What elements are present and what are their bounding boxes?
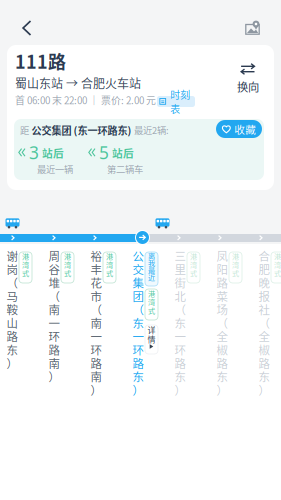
staticText: ） bbox=[216, 381, 227, 398]
staticText: 港 bbox=[190, 251, 197, 261]
staticText: 环 bbox=[174, 341, 185, 358]
staticText: 场 bbox=[216, 301, 227, 318]
staticText: 离 bbox=[148, 250, 155, 261]
staticText: ） bbox=[258, 381, 269, 398]
staticText: 我 bbox=[148, 258, 155, 268]
staticText: 路 bbox=[258, 355, 269, 371]
staticText: 里 bbox=[174, 261, 185, 277]
staticText: 街 bbox=[174, 274, 185, 291]
staticText: 路 bbox=[174, 355, 185, 371]
staticText: 港 bbox=[64, 251, 71, 261]
staticText: 三 bbox=[174, 247, 185, 264]
staticText: 菜 bbox=[216, 288, 227, 304]
staticText: 山 bbox=[6, 314, 17, 331]
staticText: （ bbox=[216, 314, 227, 331]
staticText: 南 bbox=[48, 355, 59, 371]
staticText: 南 bbox=[90, 314, 101, 331]
staticText: 111路 bbox=[15, 48, 66, 74]
staticText: 一 bbox=[48, 314, 59, 331]
staticText: 公 bbox=[132, 247, 143, 264]
staticText: 距 bbox=[20, 123, 29, 137]
staticText: 合 bbox=[258, 247, 269, 264]
staticText: 凤 bbox=[216, 247, 227, 264]
staticText: （ bbox=[6, 274, 17, 291]
staticText: 集 bbox=[132, 274, 143, 291]
staticText: ） bbox=[48, 368, 59, 385]
staticText: ） bbox=[90, 381, 101, 398]
staticText: 堆 bbox=[48, 274, 59, 291]
staticText: 收藏 bbox=[234, 121, 256, 137]
staticText: 南 bbox=[48, 301, 59, 318]
staticText: 东 bbox=[258, 368, 269, 385]
staticText: 谢 bbox=[6, 247, 17, 264]
staticText: 市 bbox=[90, 288, 101, 304]
staticText: 路 bbox=[48, 341, 59, 358]
staticText: 路 bbox=[216, 274, 227, 291]
staticText: 团 bbox=[132, 288, 143, 304]
staticText: （ bbox=[48, 288, 59, 304]
staticText: 东 bbox=[174, 314, 185, 331]
staticText: 第二辆车 bbox=[107, 162, 143, 176]
staticText: 时刻表 bbox=[170, 87, 190, 116]
staticText: 北 bbox=[174, 288, 185, 304]
staticText: 椒 bbox=[216, 341, 227, 358]
staticText: 东 bbox=[216, 368, 227, 385]
staticText: 首 06:00 末 22:00 ｜ 票价: 2.00 元 bbox=[15, 93, 156, 107]
staticText: 最近2辆: bbox=[134, 123, 169, 137]
staticText: 式 bbox=[190, 268, 197, 278]
staticText: （ bbox=[258, 314, 269, 331]
staticText: 环 bbox=[132, 341, 143, 358]
staticText: 湾 bbox=[190, 259, 197, 270]
staticText: 肥 bbox=[258, 261, 269, 277]
staticText: 式 bbox=[148, 305, 155, 316]
staticText: 东 bbox=[132, 314, 143, 331]
staticText: 花 bbox=[90, 274, 101, 291]
staticText: 湾 bbox=[148, 297, 155, 307]
staticText: 港 bbox=[106, 251, 113, 261]
button[interactable]: 换向 bbox=[228, 62, 268, 96]
staticText: 式 bbox=[22, 268, 29, 278]
staticText: ） bbox=[132, 381, 143, 398]
staticText: 湾 bbox=[64, 259, 71, 270]
staticText: 式 bbox=[232, 268, 239, 278]
staticText: 椒 bbox=[258, 341, 269, 358]
staticText: 谷 bbox=[48, 261, 59, 277]
staticText: 式 bbox=[274, 268, 281, 278]
staticText: 路 bbox=[132, 355, 143, 371]
staticText: 一 bbox=[90, 328, 101, 344]
staticText: 湾 bbox=[274, 259, 281, 270]
staticText: 湾 bbox=[106, 259, 113, 270]
staticText: （ bbox=[174, 301, 185, 318]
staticText: 裕 bbox=[90, 247, 101, 264]
staticText: 报 bbox=[258, 288, 269, 304]
button[interactable]: Back bbox=[10, 14, 44, 42]
staticText: 路 bbox=[90, 355, 101, 371]
staticText: 东 bbox=[174, 368, 185, 385]
staticText: 东 bbox=[6, 341, 17, 358]
staticText: 全 bbox=[216, 328, 227, 344]
staticText: （ bbox=[90, 301, 101, 318]
staticText: 全 bbox=[258, 328, 269, 344]
staticText: 站后 bbox=[112, 145, 134, 160]
staticText: 丰 bbox=[90, 261, 101, 277]
staticText: 马 bbox=[6, 288, 17, 304]
staticText: （ bbox=[132, 301, 143, 318]
staticText: 南 bbox=[90, 368, 101, 385]
staticText: 交 bbox=[132, 261, 143, 277]
staticText: 岗 bbox=[6, 261, 17, 277]
staticText: 站后 bbox=[42, 145, 64, 160]
staticText: 港 bbox=[232, 251, 239, 261]
staticText: 式 bbox=[106, 268, 113, 278]
staticText: 阳 bbox=[216, 261, 227, 277]
staticText: 港 bbox=[274, 251, 281, 261]
staticText: 公交集团 (东一环路东) bbox=[31, 123, 131, 137]
staticText: 蜀山东站 → 合肥火车站 bbox=[15, 74, 141, 92]
staticText: 路 bbox=[216, 355, 227, 371]
staticText: 详 bbox=[147, 324, 155, 335]
staticText: 近 bbox=[148, 272, 155, 282]
button[interactable]: 收藏 bbox=[216, 120, 262, 138]
button[interactable]: Map view bbox=[236, 14, 270, 42]
button[interactable]: 时刻表 bbox=[157, 96, 195, 107]
staticText: 情 bbox=[147, 333, 155, 345]
staticText: 路 bbox=[6, 328, 17, 344]
